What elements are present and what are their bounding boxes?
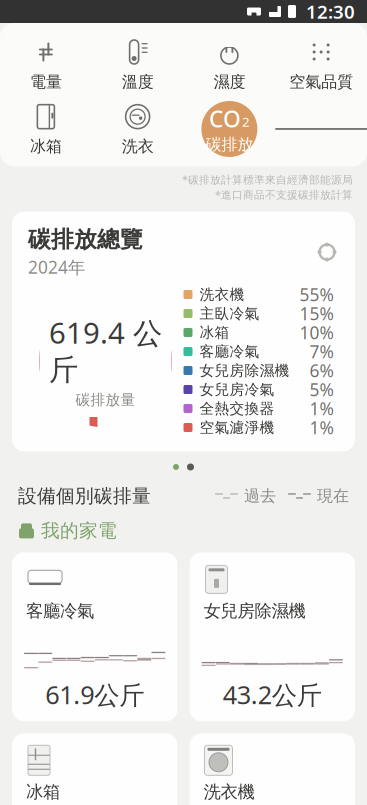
button[interactable]: 溫度	[92, 35, 184, 94]
staticText: 女兒房冷氣	[199, 380, 274, 398]
staticText: 10%	[299, 321, 333, 344]
staticText: 現在	[317, 486, 349, 506]
button[interactable]: 過去	[215, 486, 276, 506]
staticText: 7%	[309, 340, 333, 363]
staticText: 客廳冷氣	[199, 342, 259, 360]
staticText: 洗衣	[122, 137, 154, 156]
staticText: 溫度	[122, 72, 154, 92]
staticText: 5%	[309, 378, 333, 401]
staticText: 61.9公斤	[45, 678, 144, 711]
button[interactable]: 洗衣	[92, 100, 184, 158]
staticText: 過去	[244, 486, 276, 506]
staticText: 1%	[309, 416, 333, 439]
staticText: CO	[209, 104, 241, 134]
staticText: 碳排放	[205, 135, 253, 154]
staticText: 空氣濾淨機	[199, 418, 274, 436]
staticText: 2024年	[28, 255, 85, 278]
button[interactable]: 冰箱	[12, 733, 177, 805]
staticText: *碳排放計算標準來自經濟部能源局	[182, 172, 353, 186]
button[interactable]: 現在	[276, 486, 349, 506]
staticText: 6%	[309, 359, 333, 382]
staticText: 濕度	[213, 72, 245, 92]
button[interactable]: 空氣品質	[275, 35, 367, 94]
button[interactable]: 設定	[315, 240, 339, 264]
staticText: 1%	[309, 397, 333, 420]
staticText: 客廳冷氣	[26, 600, 94, 622]
staticText: 43.2公斤	[223, 678, 322, 711]
button[interactable]: 洗衣機	[189, 733, 355, 805]
button[interactable]: 客廳冷氣	[12, 552, 177, 721]
staticText: 主臥冷氣	[199, 304, 259, 322]
staticText: 碳排放總覽	[28, 226, 143, 253]
staticText: 洗衣機	[199, 285, 244, 303]
staticText: 12:30	[306, 0, 355, 24]
staticText: 2	[242, 113, 250, 130]
staticText: 冰箱	[199, 323, 229, 341]
staticText: 空氣品質	[289, 72, 353, 92]
staticText: 碳排放量	[75, 391, 135, 409]
staticText: 我的家電	[41, 519, 117, 542]
staticText: 電量	[30, 72, 62, 92]
button[interactable]: 濕度	[183, 35, 275, 94]
staticText: 設備個別碳排量	[18, 484, 151, 507]
staticText: 冰箱	[30, 137, 62, 156]
staticText: 冰箱	[26, 781, 60, 803]
staticText: 全熱交換器	[199, 399, 274, 417]
staticText: 55%	[299, 283, 333, 306]
button[interactable]: 碳排放	[183, 101, 275, 157]
staticText: 洗衣機	[203, 781, 254, 803]
staticText: 女兒房除濕機	[203, 600, 305, 622]
staticText: 女兒房除濕機	[199, 361, 289, 379]
staticText: *進口商品不支援碳排放計算	[215, 187, 353, 202]
staticText: 15%	[299, 302, 333, 325]
button[interactable]: 電量	[0, 35, 92, 94]
button[interactable]: 女兒房除濕機	[189, 552, 355, 721]
staticText: 619.4 公斤	[49, 313, 162, 388]
button[interactable]: 冰箱	[0, 100, 92, 158]
